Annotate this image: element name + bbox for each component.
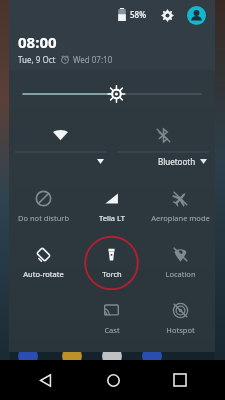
- button[interactable]: Hotspot: [146, 290, 215, 346]
- button[interactable]: Bluetooth: [118, 118, 209, 170]
- button[interactable]: Wi-Fi: [15, 118, 106, 170]
- button[interactable]: Settings: [157, 5, 177, 25]
- button[interactable]: Torch: [77, 234, 146, 290]
- staticText: Tue, 9 Oct: [18, 54, 56, 65]
- button[interactable]: Recents: [158, 360, 202, 400]
- staticText: Torch: [102, 269, 122, 279]
- button[interactable]: Back: [23, 360, 67, 400]
- staticText: Bluetooth: [158, 156, 196, 167]
- staticText: Cast: [104, 325, 120, 335]
- button[interactable]: Home: [91, 360, 135, 400]
- button[interactable]: Brightness: [23, 82, 201, 106]
- button[interactable]: Telia LT: [77, 178, 146, 234]
- staticText: Location: [165, 269, 196, 279]
- staticText: Wed 07:10: [73, 54, 113, 65]
- staticText: Telia LT: [99, 213, 125, 223]
- staticText: Aeroplane mode: [151, 213, 210, 223]
- staticText: 08:00: [18, 32, 57, 52]
- button[interactable]: Do not disturb: [9, 178, 77, 234]
- staticText: Auto-rotate: [23, 269, 64, 279]
- button[interactable]: Location: [146, 234, 215, 290]
- button[interactable]: Aeroplane mode: [146, 178, 215, 234]
- staticText: Hotspot: [166, 325, 195, 335]
- staticText: 58%: [130, 9, 146, 20]
- staticText: Do not disturb: [18, 213, 69, 223]
- button[interactable]: Auto-rotate: [9, 234, 77, 290]
- button[interactable]: Cast: [77, 290, 146, 346]
- button[interactable]: User: [185, 4, 207, 26]
